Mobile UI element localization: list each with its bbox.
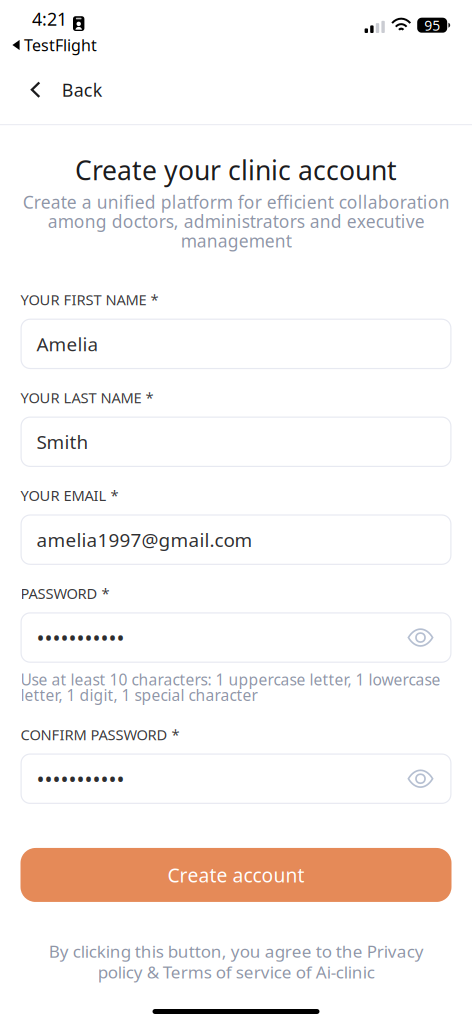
staticText: Back [62, 77, 103, 102]
staticText: CONFIRM PASSWORD * [20, 724, 179, 744]
button[interactable]: Show password [404, 615, 436, 660]
staticText: Create your clinic account [75, 152, 397, 188]
button[interactable]: Create account [20, 848, 451, 902]
button[interactable]: Show password [404, 756, 436, 801]
staticText: Create a unified platform for efficient … [22, 190, 449, 253]
staticText: YOUR FIRST NAME * [20, 290, 158, 310]
staticText: By clicking this button, you agree to th… [48, 940, 423, 983]
staticText: 4:21 [32, 7, 67, 31]
staticText: Use at least 10 characters: 1 uppercase … [20, 669, 440, 705]
staticText: 95 [424, 16, 440, 35]
staticText: YOUR LAST NAME * [20, 387, 153, 407]
staticText: ••••••••••• [36, 764, 124, 793]
staticText: amelia1997@gmail.com [36, 527, 252, 552]
staticText: PASSWORD * [20, 583, 109, 603]
staticText: TestFlight [24, 34, 97, 56]
staticText: Amelia [36, 331, 98, 357]
staticText: Smith [36, 429, 88, 455]
staticText: YOUR EMAIL * [20, 485, 118, 505]
button[interactable]: Back [0, 54, 127, 124]
staticText: ••••••••••• [36, 623, 124, 652]
staticText: Create account [167, 862, 304, 888]
